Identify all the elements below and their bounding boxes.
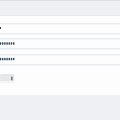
button[interactable]: Submit bbox=[0, 74, 14, 83]
